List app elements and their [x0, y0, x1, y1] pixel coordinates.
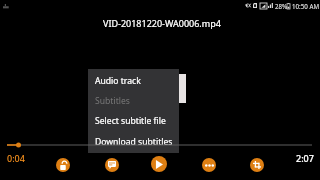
- staticText: 28%: [275, 2, 288, 10]
- button[interactable]: Aspect ratio: [250, 158, 264, 172]
- staticText: Download subtitles: [95, 136, 173, 148]
- button[interactable]: Download subtitles: [88, 131, 179, 152]
- button[interactable]: Select subtitle file: [88, 110, 179, 131]
- button[interactable]: Play: [151, 156, 167, 172]
- staticText: Audio track: [95, 75, 141, 87]
- button[interactable]: Audio track: [88, 70, 179, 91]
- staticText: 10:50 AM: [292, 2, 319, 10]
- staticText: 2:07: [296, 152, 314, 164]
- staticText: VID-20181220-WA0006.mp4: [103, 17, 221, 29]
- button[interactable]: Subtitles: [105, 158, 119, 172]
- staticText: Subtitles: [95, 95, 130, 107]
- button[interactable]: More options: [202, 158, 216, 172]
- staticText: Select subtitle file: [95, 115, 166, 127]
- button[interactable]: Lock: [56, 158, 70, 172]
- staticText: 0:04: [7, 152, 25, 164]
- button[interactable]: Subtitles: [88, 90, 179, 111]
